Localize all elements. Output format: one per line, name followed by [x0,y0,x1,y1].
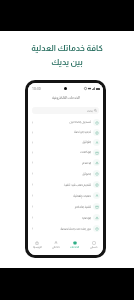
staticText: طلبات إنهائية [73,194,91,198]
staticText: كافة خدماتك العدلية [31,44,103,53]
staticText: بين يديك [51,58,83,67]
button[interactable]: حسابي [84,234,103,255]
button[interactable]: دور الخدمات المتخصصة [28,223,103,234]
staticText: الرئيسية [33,246,42,249]
staticText: الإعلام [82,161,91,165]
button[interactable]: تسجيل المحامين [28,117,103,127]
staticText: الموثق [82,172,91,176]
staticText: الخدمات [70,246,79,249]
staticText: دور الخدمات المتخصصة [60,227,91,231]
staticText: 10:30 [32,86,41,91]
button[interactable]: بحث [32,107,99,114]
staticText: تقديم طلب قيد تنفيذ [63,183,91,187]
staticText: حسابي [90,246,98,249]
button[interactable]: الموثق [28,168,103,179]
staticText: الوكالات [79,150,91,154]
button[interactable]: تجديد الرخصة [28,127,103,137]
button[interactable]: الوكالات [28,147,103,157]
button[interactable]: خدماتي [46,234,65,255]
button[interactable]: الوصايا [28,212,103,223]
staticText: خدماتي [52,246,60,249]
staticText: تسجيل المحامين [69,120,91,124]
button[interactable]: تقديم طلب قيد تنفيذ [28,179,103,190]
staticText: تنفيذ الأحكام [74,205,91,209]
button[interactable]: الإعلام [28,157,103,168]
button[interactable]: التوثيق [28,137,103,147]
button[interactable]: الخدمات [65,234,84,255]
button[interactable]: الرئيسية [28,234,46,255]
staticText: الخدمات الالكترونية [52,96,80,100]
staticText: تجديد الرخصة [74,130,91,134]
staticText: التوثيق [82,140,91,144]
button[interactable]: تنفيذ الأحكام [28,201,103,212]
button[interactable]: طلبات إنهائية [28,190,103,201]
staticText: الوصايا [82,216,91,220]
staticText: بحث [87,109,93,112]
